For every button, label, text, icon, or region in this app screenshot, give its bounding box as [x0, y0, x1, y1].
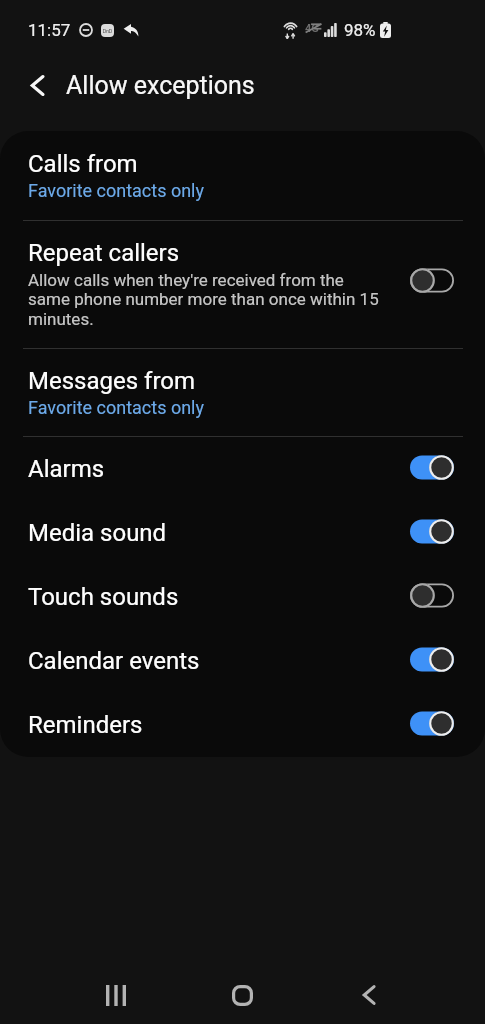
button[interactable]: Touch sounds [0, 565, 485, 629]
staticText: Calendar events [28, 647, 410, 675]
staticText: Favorite contacts only [28, 180, 205, 201]
staticText: Alarms [28, 455, 410, 483]
staticText: Messages from [28, 367, 196, 395]
staticText: Favorite contacts only [28, 397, 205, 418]
button[interactable]: Alarms [0, 437, 485, 501]
staticText: DnD [103, 28, 113, 34]
button[interactable]: Calendar events [0, 629, 485, 693]
button[interactable]: Repeat callers [0, 221, 485, 348]
staticText: Reminders [28, 711, 410, 739]
button[interactable]: Messages from [0, 349, 485, 436]
staticText: Repeat callers [28, 239, 180, 267]
staticText: 11:57 [28, 20, 71, 40]
staticText: Calls from [28, 150, 138, 178]
button[interactable]: Reminders [0, 693, 485, 757]
button[interactable]: Navigate up [18, 66, 56, 104]
button[interactable]: Calls from [0, 131, 485, 220]
button[interactable]: Media sound [0, 501, 485, 565]
staticText: Media sound [28, 519, 410, 547]
staticText: Allow exceptions [66, 71, 255, 100]
staticText: 4G [305, 22, 319, 35]
button[interactable]: Home [209, 967, 276, 1023]
staticText: 98% [344, 20, 376, 40]
staticText: Allow calls when they're received from t… [28, 270, 380, 330]
staticText: Touch sounds [28, 583, 410, 611]
button[interactable]: Recent apps [82, 967, 149, 1023]
button[interactable]: Back [335, 967, 402, 1023]
